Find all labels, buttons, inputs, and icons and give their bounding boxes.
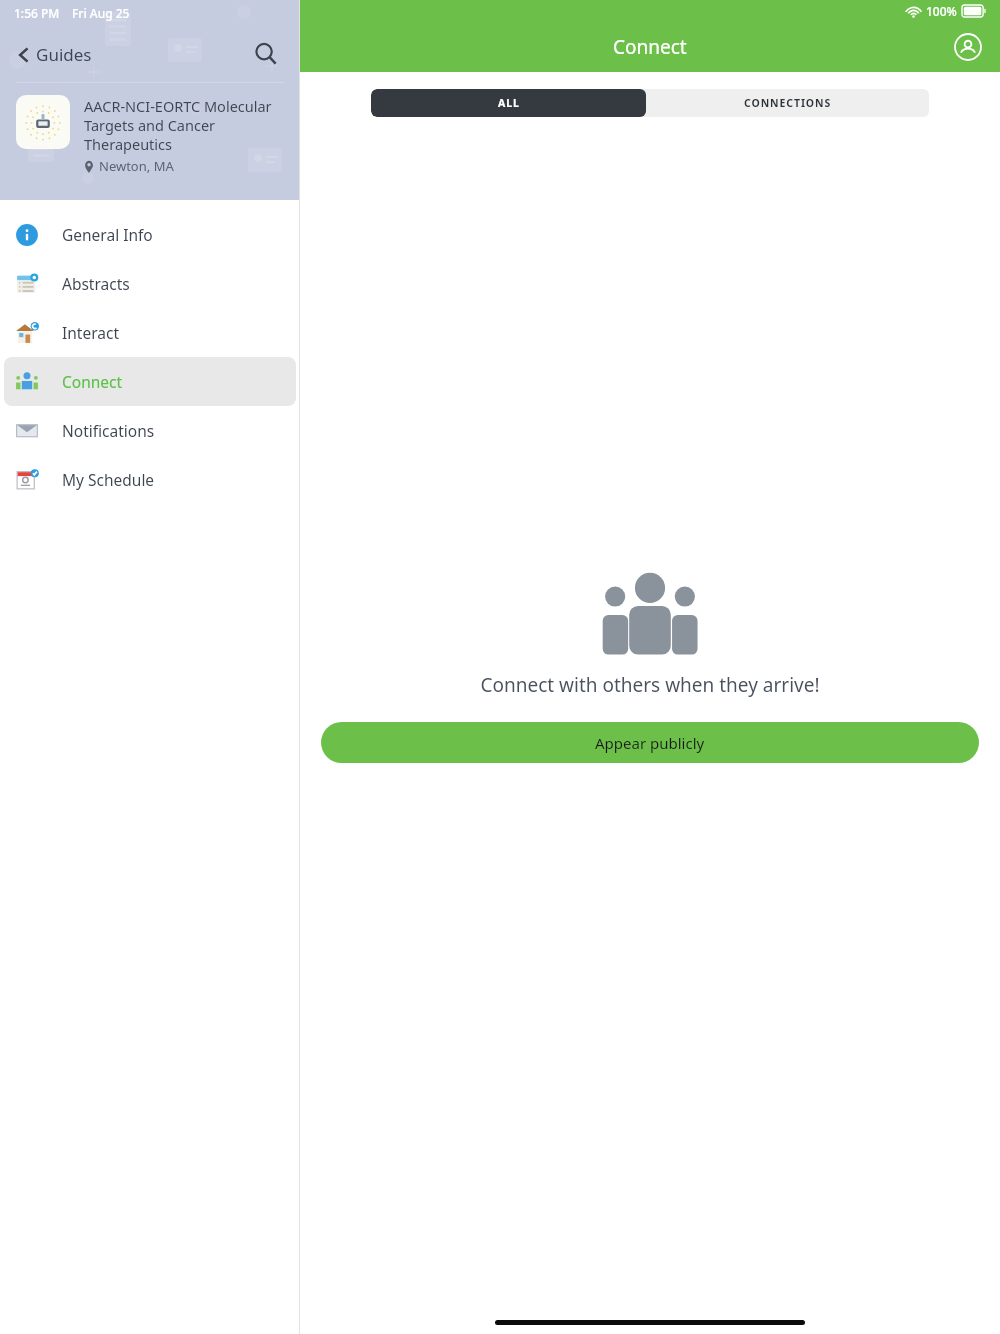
staticText: Abstracts [62, 273, 130, 294]
button[interactable]: My Schedule [4, 455, 296, 504]
button[interactable]: Guides [14, 39, 94, 70]
staticText: My Schedule [62, 469, 155, 490]
staticText: Fri Aug 25 [72, 5, 130, 21]
button[interactable]: Appear publicly [321, 722, 979, 763]
staticText: General Info [62, 224, 153, 245]
staticText: 100% [926, 3, 957, 19]
button[interactable]: CONNECTIONS [646, 89, 929, 117]
staticText: Interact [62, 322, 119, 343]
button[interactable]: Interact [4, 308, 296, 357]
staticText: Newton, MA [99, 157, 174, 175]
staticText: Notifications [62, 420, 155, 441]
button[interactable]: General Info [4, 210, 296, 259]
button[interactable]: Search [246, 34, 286, 74]
button[interactable]: Connect [4, 357, 296, 406]
staticText: ALL [498, 96, 520, 110]
staticText: Guides [36, 43, 92, 66]
staticText: CONNECTIONS [744, 96, 832, 110]
button[interactable]: ALL [371, 89, 646, 117]
button[interactable]: Abstracts [4, 259, 296, 308]
staticText: Appear publicly [595, 733, 705, 753]
button[interactable]: Account [950, 29, 986, 65]
staticText: Connect with others when they arrive! [480, 672, 820, 698]
staticText: Connect [613, 34, 687, 60]
button[interactable]: Notifications [4, 406, 296, 455]
staticText: Connect [62, 371, 123, 392]
staticText: AACR-NCI-EORTC Molecular Targets and Can… [84, 96, 284, 154]
button[interactable]: AACR-NCI-EORTC Molecular Targets and Can… [0, 95, 300, 175]
staticText: 1:56 PM [14, 5, 60, 21]
